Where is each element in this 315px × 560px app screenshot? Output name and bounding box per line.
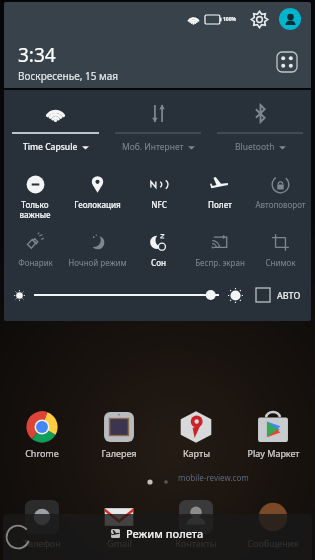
button[interactable]: Полет — [189, 171, 250, 227]
staticText: Моб. Интернет — [122, 141, 184, 153]
staticText: 100% — [223, 16, 237, 23]
staticText: АВТО — [277, 289, 301, 301]
staticText: Автоповорот — [255, 199, 306, 210]
button[interactable]: Сообщения — [238, 500, 308, 549]
button[interactable]: АВТО — [256, 288, 301, 302]
button[interactable]: Сон — [128, 229, 189, 273]
button[interactable]: Фонарик — [4, 229, 66, 273]
staticText: mobile-review.com — [178, 472, 249, 483]
staticText: Gmail — [107, 537, 132, 549]
button[interactable]: Только важные — [4, 171, 66, 227]
staticText: Геолокация — [74, 199, 121, 210]
button[interactable]: Галерея — [84, 410, 154, 459]
button[interactable]: Settings — [248, 8, 270, 30]
staticText: Сон — [151, 257, 166, 268]
button[interactable]: Time Capsule — [4, 98, 107, 161]
staticText: Галерея — [101, 447, 137, 459]
button[interactable]: Bluetooth — [209, 98, 311, 161]
staticText: Режим полета — [126, 526, 204, 541]
button[interactable]: User profile — [279, 8, 301, 30]
staticText: Time Capsule — [23, 141, 78, 153]
button[interactable]: Gmail — [84, 500, 154, 549]
button[interactable]: Карты — [161, 410, 231, 459]
button[interactable]: Беспр. экран — [189, 229, 250, 273]
staticText: Фонарик — [18, 257, 53, 268]
button[interactable]: Моб. Интернет — [107, 98, 209, 161]
button[interactable]: Режим полета — [3, 514, 312, 560]
button[interactable]: Ночной режим — [66, 229, 128, 273]
button[interactable]: All settings — [275, 50, 299, 74]
button[interactable]: Brightness — [34, 285, 219, 305]
staticText: Ночной режим — [68, 257, 127, 268]
staticText: Воскресенье, 15 мая — [18, 69, 119, 83]
staticText: Play Маркет — [247, 447, 300, 459]
staticText: Беспр. экран — [195, 257, 245, 268]
staticText: Контакты — [175, 537, 217, 549]
staticText: Bluetooth — [235, 141, 275, 153]
button[interactable]: NFC — [128, 171, 189, 227]
staticText: Только важные — [19, 199, 51, 220]
button[interactable]: Контакты — [161, 500, 231, 549]
staticText: Телефон — [23, 537, 61, 549]
staticText: Сообщения — [247, 537, 299, 549]
button[interactable]: Автоповорот — [250, 171, 311, 227]
staticText: 3:34 — [18, 42, 56, 68]
button[interactable]: Геолокация — [66, 171, 128, 227]
button[interactable]: Снимок — [250, 229, 311, 273]
button[interactable]: Play Маркет — [238, 410, 308, 459]
staticText: Chrome — [25, 447, 59, 459]
staticText: Карты — [183, 447, 210, 459]
button[interactable]: Chrome — [7, 410, 77, 459]
staticText: Полет — [208, 199, 232, 210]
staticText: Снимок — [265, 257, 296, 268]
button[interactable]: Телефон — [7, 500, 77, 549]
staticText: NFC — [151, 199, 167, 210]
